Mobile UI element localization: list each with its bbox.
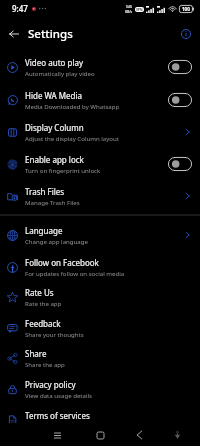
staticText: 546: [126, 4, 132, 9]
button[interactable]: Back: [130, 426, 148, 444]
staticText: Enable app lock: [25, 154, 84, 165]
button[interactable]: Follow on Facebook: [0, 251, 200, 283]
staticText: Media Downloaded by Whatsapp: [25, 102, 120, 110]
button[interactable]: Language: [0, 219, 200, 251]
button[interactable]: Display Column: [0, 116, 200, 148]
button[interactable]: Hide WA Media: [0, 84, 200, 116]
button[interactable]: Terms of services: [0, 404, 200, 436]
button[interactable]: Video auto play: [0, 51, 200, 83]
staticText: Share your thoughts: [25, 330, 84, 338]
button[interactable]: Feedback: [0, 312, 200, 344]
button[interactable]: Download: [168, 426, 186, 444]
button[interactable]: Toggle: [168, 157, 192, 171]
button[interactable]: Toggle: [168, 60, 192, 74]
button[interactable]: Trash Files: [0, 180, 200, 212]
button[interactable]: Info: [172, 20, 200, 48]
button[interactable]: Share: [0, 342, 200, 374]
staticText: Video auto play: [25, 57, 84, 68]
staticText: 9:47: [12, 3, 28, 14]
button[interactable]: Enable app lock: [0, 148, 200, 180]
button[interactable]: Home: [91, 426, 109, 444]
staticText: Follow on Facebook: [25, 257, 99, 268]
staticText: Rate the app: [25, 299, 62, 307]
staticText: For updates follow on social media: [25, 269, 125, 277]
button[interactable]: Back: [0, 20, 28, 48]
staticText: Hide WA Media: [25, 90, 83, 101]
staticText: Manage Trash Files: [25, 198, 80, 206]
staticText: 100: [182, 6, 190, 12]
staticText: KB/s: [125, 9, 133, 14]
button[interactable]: Rate Us: [0, 281, 200, 313]
staticText: Feedback: [25, 318, 61, 329]
staticText: Change app language: [25, 237, 88, 245]
button[interactable]: Open: [182, 127, 192, 137]
staticText: Adjust the display Column layout: [25, 134, 120, 142]
staticText: Share: [25, 348, 47, 359]
staticText: Trash Files: [25, 186, 65, 197]
staticText: Privacy policy: [25, 379, 76, 390]
button[interactable]: Open: [182, 230, 192, 240]
button[interactable]: Privacy policy: [0, 373, 200, 405]
staticText: Automatically play video: [25, 69, 95, 77]
button[interactable]: Recents: [48, 426, 66, 444]
staticText: Display Column: [25, 122, 84, 133]
staticText: Turn on fingerprint unlock: [25, 166, 101, 174]
staticText: Terms of services: [25, 410, 90, 421]
staticText: Rate Us: [25, 287, 54, 298]
button[interactable]: Toggle: [168, 93, 192, 107]
staticText: View data usage details: [25, 391, 93, 399]
staticText: Language: [25, 225, 63, 236]
button[interactable]: Open: [182, 191, 192, 201]
staticText: VPN: [136, 8, 143, 12]
staticText: Settings: [28, 26, 73, 42]
staticText: Share the app: [25, 360, 65, 368]
